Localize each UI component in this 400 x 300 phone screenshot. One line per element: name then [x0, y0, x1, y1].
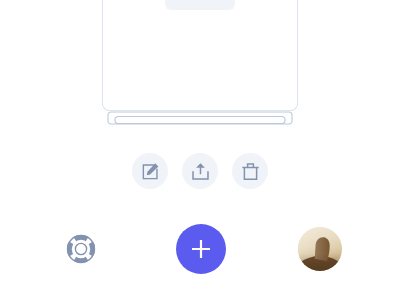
button[interactable]: Profile	[298, 227, 342, 271]
button[interactable]: Edit	[132, 153, 168, 189]
button[interactable]	[102, 0, 298, 111]
button[interactable]: Delete	[232, 153, 268, 189]
button[interactable]: Share	[182, 153, 218, 189]
button[interactable]: Add	[176, 224, 226, 274]
button[interactable]: Help	[61, 229, 101, 269]
